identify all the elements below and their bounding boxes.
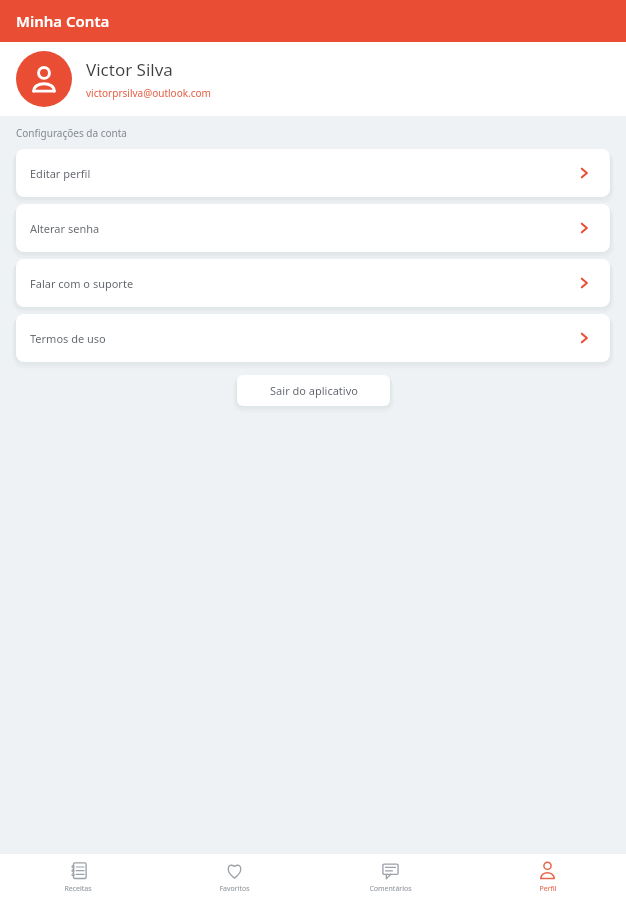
staticText: Falar com o suporte (30, 276, 134, 291)
staticText: Minha Conta (16, 11, 110, 31)
button[interactable]: Minha Conta (0, 0, 626, 42)
button[interactable]: Termos de uso (16, 314, 610, 362)
button[interactable]: Receitas (0, 854, 156, 900)
button[interactable]: Comentários (312, 854, 469, 900)
staticText: Perfil (539, 884, 557, 894)
staticText: Termos de uso (30, 331, 106, 346)
button[interactable]: Alterar senha (16, 204, 610, 252)
staticText: victorprsilva@outlook.com (86, 86, 211, 100)
button[interactable]: Perfil (469, 854, 626, 900)
staticText: Receitas (64, 884, 92, 894)
staticText: Victor Silva (86, 58, 173, 81)
button[interactable]: Favoritos (156, 854, 312, 900)
button[interactable]: Foto do perfil (16, 51, 72, 107)
staticText: Editar perfil (30, 166, 91, 181)
staticText: Configurações da conta (16, 126, 127, 140)
staticText: Sair do aplicativo (270, 383, 358, 398)
staticText: Comentários (369, 884, 412, 894)
staticText: Favoritos (219, 884, 250, 894)
button[interactable]: Editar perfil (16, 149, 610, 197)
button[interactable]: Sair do aplicativo (237, 375, 390, 406)
staticText: Alterar senha (30, 221, 100, 236)
button[interactable]: Falar com o suporte (16, 259, 610, 307)
